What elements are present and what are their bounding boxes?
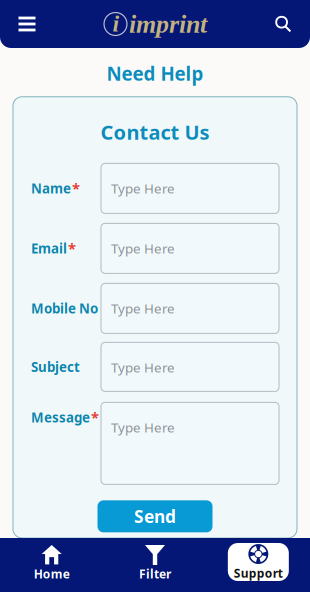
staticText: i xyxy=(112,10,119,37)
button[interactable]: Home xyxy=(0,538,103,592)
staticText: Type Here xyxy=(111,358,175,376)
staticText: Filter xyxy=(139,566,171,582)
staticText: Need Help xyxy=(106,61,203,86)
button[interactable]: Menu xyxy=(5,0,49,48)
staticText: Type Here xyxy=(111,179,175,197)
staticText: Type Here xyxy=(111,418,175,436)
staticText: Home xyxy=(34,566,70,582)
staticText: Contact Us xyxy=(100,119,209,145)
button[interactable]: Send xyxy=(97,500,212,532)
staticText: Message xyxy=(31,408,90,426)
staticText: Send xyxy=(134,505,176,528)
staticText: Type Here xyxy=(111,299,175,317)
staticText: Mobile No xyxy=(31,299,98,317)
button[interactable]: Support xyxy=(207,538,310,592)
staticText: * xyxy=(68,239,76,258)
staticText: Email xyxy=(31,239,67,257)
button[interactable]: Filter xyxy=(103,538,207,592)
staticText: Support xyxy=(234,565,283,581)
staticText: * xyxy=(91,408,99,427)
button[interactable]: Search xyxy=(261,0,305,48)
staticText: Type Here xyxy=(111,239,175,257)
staticText: imprint xyxy=(129,10,207,38)
staticText: * xyxy=(72,179,80,198)
staticText: Name xyxy=(31,179,71,197)
staticText: Subject xyxy=(31,358,80,376)
